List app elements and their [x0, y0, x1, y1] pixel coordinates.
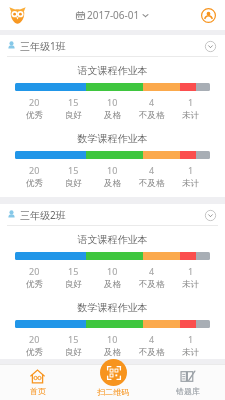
staticText: 优秀	[26, 110, 43, 121]
staticText: 首页	[30, 386, 46, 396]
button[interactable]: 数学课程作业本	[0, 125, 225, 193]
button[interactable]: 数学课程作业本	[0, 294, 225, 359]
staticText: 扫二维码	[97, 387, 129, 397]
button[interactable]: 三年级1班	[0, 35, 225, 56]
staticText: 15	[68, 265, 79, 277]
staticText: 不及格	[139, 279, 165, 290]
staticText: 2017-06-01	[87, 8, 140, 22]
staticText: 数学课程作业本	[15, 301, 210, 314]
staticText: 1	[188, 333, 194, 345]
staticText: 优秀	[26, 347, 43, 358]
staticText: 4	[149, 333, 155, 345]
button[interactable]: 首页	[0, 364, 75, 400]
staticText: 三年级1班	[20, 39, 66, 53]
button[interactable]: 语文课程作业本	[0, 57, 225, 125]
staticText: 及格	[104, 178, 121, 189]
button[interactable]: 错题库	[150, 364, 225, 400]
staticText: 未计	[182, 279, 199, 290]
staticText: 20	[29, 96, 40, 108]
staticText: 1	[188, 164, 194, 176]
staticText: 数学课程作业本	[15, 132, 210, 145]
button[interactable]: Logo	[5, 3, 29, 27]
staticText: 及格	[104, 279, 121, 290]
staticText: 语文课程作业本	[15, 233, 210, 246]
staticText: 10	[107, 265, 118, 277]
button[interactable]: Collapse	[202, 38, 218, 54]
staticText: 及格	[104, 110, 121, 121]
staticText: 15	[68, 164, 79, 176]
staticText: 15	[68, 333, 79, 345]
staticText: 未计	[182, 178, 199, 189]
staticText: 10	[107, 96, 118, 108]
staticText: 10	[107, 333, 118, 345]
staticText: 4	[149, 164, 155, 176]
button[interactable]: 三年级2班	[0, 204, 225, 225]
staticText: 优秀	[26, 178, 43, 189]
staticText: 良好	[65, 110, 82, 121]
staticText: 不及格	[139, 178, 165, 189]
staticText: 15	[68, 96, 79, 108]
staticText: 20	[29, 164, 40, 176]
button[interactable]: Collapse	[202, 207, 218, 223]
button[interactable]: 2017-06-01	[76, 8, 149, 22]
staticText: 良好	[65, 347, 82, 358]
staticText: 20	[29, 265, 40, 277]
staticText: 三年级2班	[20, 208, 66, 222]
staticText: 10	[107, 164, 118, 176]
staticText: 未计	[182, 347, 199, 358]
staticText: 优秀	[26, 279, 43, 290]
staticText: 1	[188, 96, 194, 108]
staticText: 不及格	[139, 347, 165, 358]
staticText: 错题库	[176, 386, 200, 396]
button[interactable]: Profile	[197, 4, 219, 26]
staticText: 及格	[104, 347, 121, 358]
staticText: 4	[149, 96, 155, 108]
staticText: 4	[149, 265, 155, 277]
staticText: 20	[29, 333, 40, 345]
staticText: 1	[188, 265, 194, 277]
staticText: 语文课程作业本	[15, 64, 210, 77]
staticText: 良好	[65, 279, 82, 290]
button[interactable]: 语文课程作业本	[0, 226, 225, 294]
button[interactable]: 扫二维码	[82, 359, 144, 400]
staticText: 良好	[65, 178, 82, 189]
staticText: 未计	[182, 110, 199, 121]
staticText: 不及格	[139, 110, 165, 121]
